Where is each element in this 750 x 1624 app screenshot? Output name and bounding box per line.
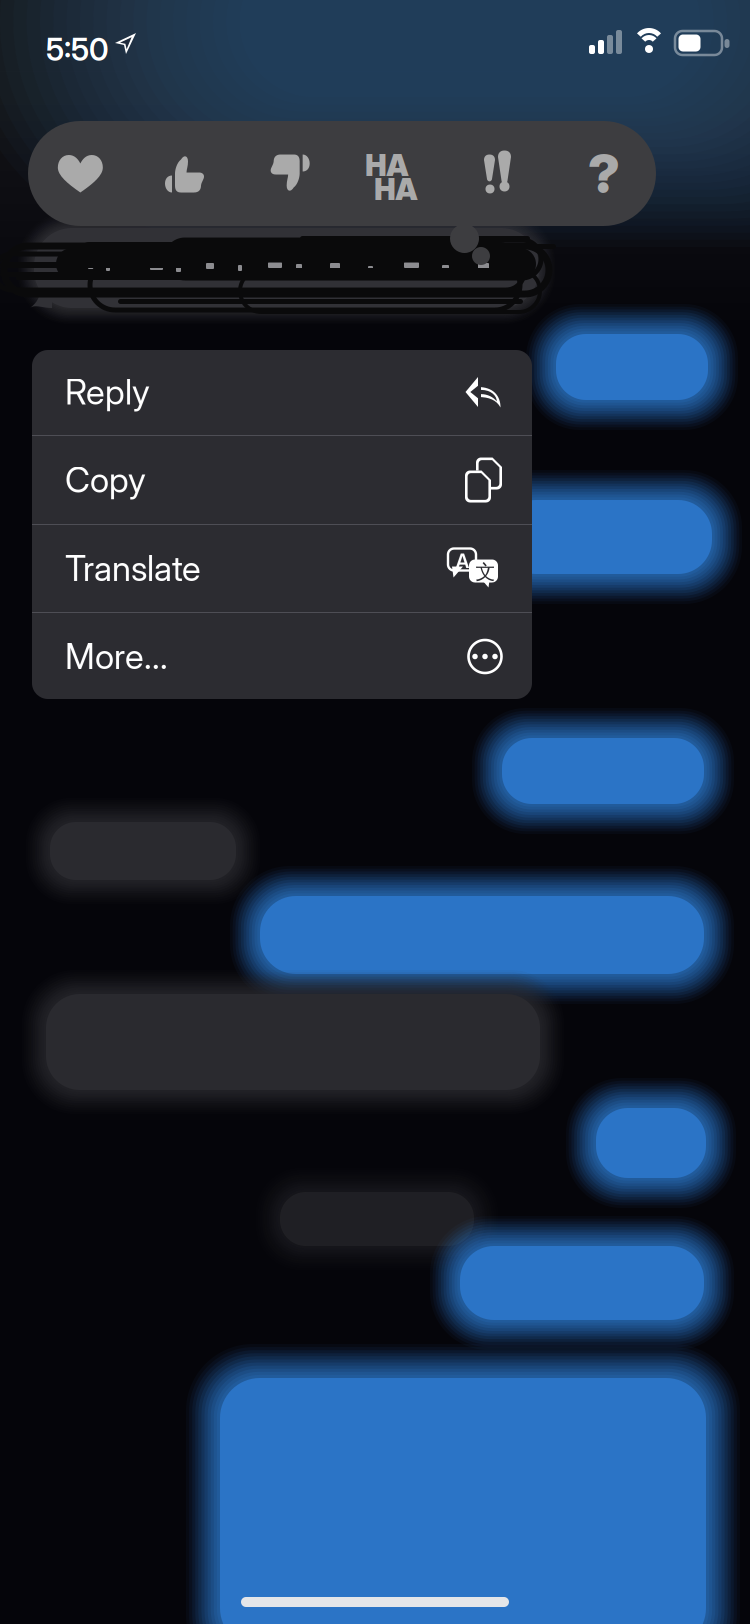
staticText: HA xyxy=(365,147,408,183)
staticText: 5:50 xyxy=(46,31,109,68)
staticText: HA xyxy=(374,171,417,207)
button[interactable]: Translate xyxy=(32,525,532,612)
button[interactable]: Reply xyxy=(32,349,532,435)
button[interactable]: Like xyxy=(133,121,237,226)
staticText: More... xyxy=(65,635,168,677)
staticText: 文 xyxy=(475,559,495,585)
button[interactable]: Haha xyxy=(342,121,447,226)
button[interactable]: Dislike xyxy=(237,121,342,226)
staticText: Copy xyxy=(65,459,146,501)
staticText: Translate xyxy=(65,547,201,589)
button[interactable]: Copy xyxy=(32,436,532,524)
button[interactable]: Question xyxy=(551,121,656,226)
button[interactable]: Love xyxy=(28,121,133,226)
staticText: ? xyxy=(588,141,620,206)
button[interactable]: More... xyxy=(32,613,532,700)
staticText: A xyxy=(455,549,469,573)
button[interactable]: Emphasize xyxy=(447,121,551,226)
staticText: Reply xyxy=(65,371,150,413)
